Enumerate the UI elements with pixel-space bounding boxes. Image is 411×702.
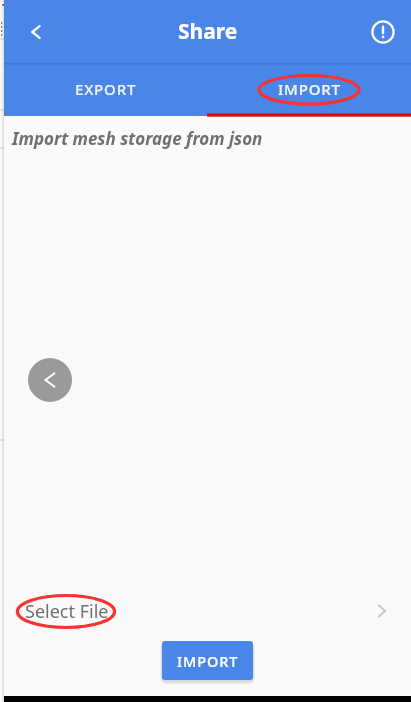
staticText: Share [178, 17, 238, 46]
button[interactable]: Info [361, 10, 405, 54]
button[interactable]: Back [14, 10, 58, 54]
staticText: IMPORT [278, 79, 341, 99]
staticText: Select File [25, 599, 109, 624]
staticText: IMPORT [177, 651, 239, 671]
button[interactable]: IMPORT [162, 641, 253, 680]
button[interactable]: EXPORT [4, 63, 207, 116]
button[interactable]: Select File [4, 589, 411, 641]
button[interactable]: IMPORT [207, 63, 411, 116]
staticText: EXPORT [75, 79, 137, 99]
staticText: Import mesh storage from json [12, 127, 263, 150]
button[interactable]: Open navigation drawer [28, 358, 72, 402]
